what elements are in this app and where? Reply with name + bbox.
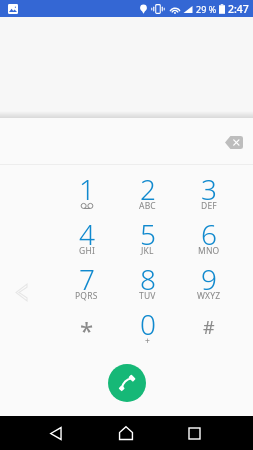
staticText: 1 [79, 170, 95, 208]
staticText: 9 [201, 260, 217, 298]
button[interactable]: 4 [56, 217, 117, 262]
button[interactable]: 1 [56, 172, 117, 217]
staticText: 0 [140, 305, 156, 343]
staticText: ABC [139, 200, 156, 212]
staticText: # [203, 315, 215, 340]
staticText: * [80, 314, 94, 347]
staticText: PQRS [75, 290, 98, 302]
staticText: 4 [79, 215, 95, 253]
staticText: TUV [139, 290, 156, 302]
staticText: 2:47 [228, 2, 249, 16]
button[interactable]: 0 [117, 307, 178, 352]
staticText: + [145, 335, 151, 347]
staticText: JKL [141, 245, 154, 257]
button[interactable]: Recents [178, 416, 210, 450]
staticText: 29 % [196, 3, 217, 15]
staticText: 2 [140, 170, 156, 208]
button[interactable]: 5 [117, 217, 178, 262]
staticText: 6 [201, 215, 217, 253]
staticText: DEF [201, 200, 217, 212]
button[interactable]: Call [108, 364, 146, 402]
button[interactable]: Back [40, 416, 72, 450]
button[interactable]: 8 [117, 262, 178, 307]
staticText: 5 [140, 215, 156, 253]
staticText: WXYZ [197, 290, 221, 302]
button[interactable]: Expand dialpad options [10, 280, 32, 304]
staticText: MNO [198, 245, 220, 257]
staticText: 7 [79, 260, 95, 298]
staticText: 8 [140, 260, 156, 298]
button[interactable]: 3 [178, 172, 239, 217]
staticText: 3 [201, 170, 217, 208]
button[interactable]: Backspace [219, 127, 249, 157]
button[interactable]: 6 [178, 217, 239, 262]
button[interactable]: 7 [56, 262, 117, 307]
button[interactable]: Home [110, 416, 142, 450]
button[interactable]: * [56, 307, 117, 352]
button[interactable]: 2 [117, 172, 178, 217]
button[interactable]: # [178, 307, 239, 352]
button[interactable]: 9 [178, 262, 239, 307]
staticText: GHI [79, 245, 95, 257]
